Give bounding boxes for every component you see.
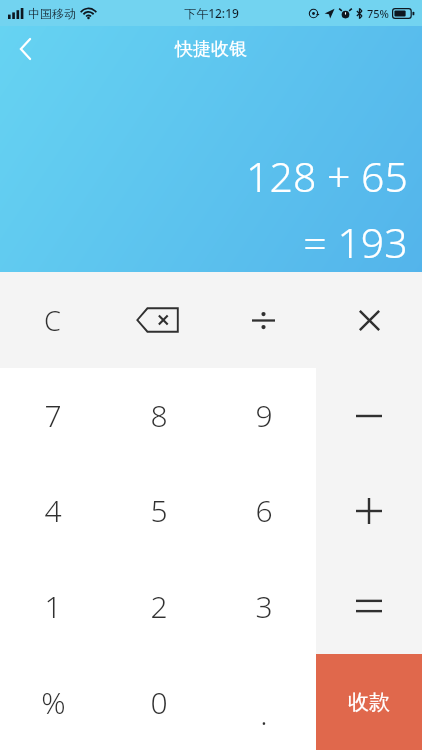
staticText: 0 [150,682,168,723]
staticText: 75% [367,6,389,21]
button[interactable]: 6 [211,463,316,558]
staticText: 5 [150,490,168,531]
staticText: C [44,302,61,339]
button[interactable]: 7 [0,368,106,463]
staticText: % [41,682,66,723]
staticText: 6 [255,490,273,531]
button[interactable]: 1 [0,558,106,654]
staticText: 快捷收银 [175,38,247,61]
button[interactable]: Backspace [105,272,210,368]
staticText: 3 [255,586,273,627]
staticText: 中国移动 [28,6,76,21]
staticText: 收款 [348,689,390,715]
staticText: . [260,693,268,734]
button[interactable]: 8 [106,368,211,463]
button[interactable]: 收款 [316,654,422,750]
button[interactable]: 2 [106,558,211,654]
button[interactable]: 3 [211,558,316,654]
button[interactable]: % [0,654,106,750]
staticText: 8 [150,395,168,436]
button[interactable]: Equals [316,558,422,654]
staticText: 9 [255,395,273,436]
button[interactable]: Back [0,26,50,72]
button[interactable]: Multiply [316,272,422,368]
staticText: 下午12:19 [184,5,239,21]
button[interactable]: Minus [316,368,422,463]
button[interactable]: Divide [210,272,316,368]
button[interactable]: . [211,654,316,750]
staticText: 1 [44,586,62,627]
button[interactable]: Plus [316,463,422,558]
button[interactable]: 0 [106,654,211,750]
staticText: 2 [150,586,168,627]
staticText: = 193 [303,214,408,270]
button[interactable]: 9 [211,368,316,463]
button[interactable]: Clear [0,272,105,368]
staticText: 128 + 65 [246,148,408,204]
button[interactable]: 5 [106,463,211,558]
staticText: 4 [44,490,62,531]
staticText: 7 [44,395,62,436]
button[interactable]: 4 [0,463,106,558]
